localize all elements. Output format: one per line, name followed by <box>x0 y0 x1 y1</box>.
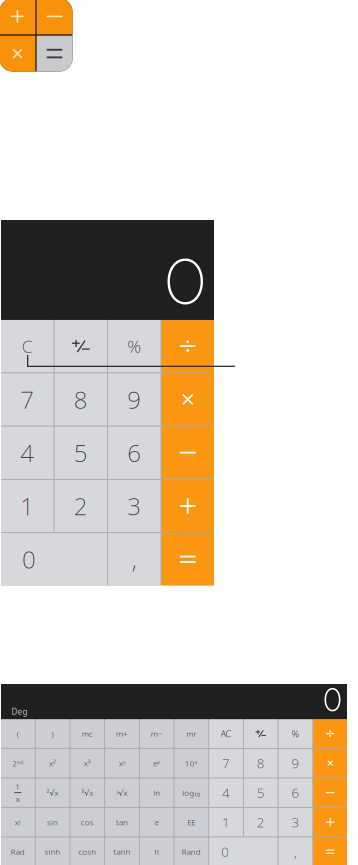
button[interactable]: Add <box>313 808 347 836</box>
staticText: ʸ√x <box>116 787 127 798</box>
staticText: 4 <box>20 437 34 469</box>
button[interactable]: 2 <box>54 480 107 532</box>
button[interactable]: AC <box>209 719 243 748</box>
button[interactable]: 1 <box>209 808 243 836</box>
staticText: ) <box>52 728 54 739</box>
staticText: 9 <box>291 754 299 772</box>
staticText: Deg <box>11 706 27 717</box>
button[interactable]: x! <box>1 808 35 836</box>
button[interactable]: Change sign <box>54 320 107 372</box>
staticText: x² <box>49 758 56 768</box>
button[interactable]: mc <box>70 719 104 748</box>
staticText: % <box>127 335 141 358</box>
button[interactable]: 5 <box>244 778 278 807</box>
button[interactable]: Multiply <box>313 749 347 777</box>
button[interactable]: Subtract <box>161 426 214 479</box>
button[interactable]: , <box>279 837 312 865</box>
staticText: ²√x <box>47 787 59 798</box>
button[interactable]: 10ˣ <box>174 749 208 777</box>
staticText: 3 <box>127 490 141 522</box>
button[interactable]: Rad <box>1 837 35 865</box>
staticText: mc <box>82 728 93 739</box>
button[interactable]: e <box>140 808 173 836</box>
button[interactable]: One over x <box>1 778 35 807</box>
button[interactable]: ) <box>36 719 69 748</box>
staticText: AC <box>221 727 232 740</box>
button[interactable]: Equals <box>313 837 347 865</box>
button[interactable]: tan <box>105 808 139 836</box>
button[interactable]: 9 <box>108 373 160 425</box>
staticText: m− <box>151 728 163 739</box>
button[interactable]: 4 <box>1 426 53 479</box>
button[interactable]: 4 <box>209 778 243 807</box>
button[interactable]: Change sign <box>244 719 278 748</box>
staticText: log₁₀ <box>182 787 200 798</box>
button[interactable]: Divide <box>313 719 347 748</box>
button[interactable]: % <box>279 719 312 748</box>
button[interactable]: π <box>140 837 173 865</box>
button[interactable]: 2ⁿᵈ <box>1 749 35 777</box>
button[interactable]: Calculator app icon <box>0 0 72 71</box>
staticText: ln <box>153 787 160 798</box>
button[interactable]: % <box>108 320 160 372</box>
button[interactable]: 0 <box>209 837 278 865</box>
button[interactable]: 1 <box>1 480 53 532</box>
button[interactable]: cosh <box>70 837 104 865</box>
staticText: 2 <box>74 490 88 522</box>
button[interactable]: cos <box>70 808 104 836</box>
button[interactable]: m− <box>140 719 173 748</box>
button[interactable]: tanh <box>105 837 139 865</box>
button[interactable]: Multiply <box>161 373 214 425</box>
staticText: 1 <box>222 813 230 831</box>
button[interactable]: ²√x <box>36 778 69 807</box>
staticText: x³ <box>84 758 91 768</box>
button[interactable]: 8 <box>54 373 107 425</box>
staticText: sin <box>47 817 58 827</box>
button[interactable]: 9 <box>279 749 312 777</box>
button[interactable]: 3 <box>279 808 312 836</box>
staticText: EE <box>187 817 195 827</box>
button[interactable]: ³√x <box>70 778 104 807</box>
button[interactable]: , <box>108 533 160 585</box>
staticText: 3 <box>291 813 299 831</box>
button[interactable]: Add <box>161 480 214 532</box>
button[interactable]: Equals <box>161 533 214 585</box>
staticText: 10ˣ <box>185 758 198 768</box>
button[interactable]: eˣ <box>140 749 173 777</box>
button[interactable]: m+ <box>105 719 139 748</box>
button[interactable]: sinh <box>36 837 69 865</box>
staticText: 0 <box>221 843 229 860</box>
button[interactable]: mr <box>174 719 208 748</box>
staticText: 5 <box>74 437 88 469</box>
button[interactable]: 0 <box>1 533 107 585</box>
button[interactable]: sin <box>36 808 69 836</box>
button[interactable]: 8 <box>244 749 278 777</box>
staticText: 2 <box>257 813 265 831</box>
staticText: sinh <box>45 846 61 857</box>
button[interactable]: xʸ <box>105 749 139 777</box>
button[interactable]: 7 <box>209 749 243 777</box>
button[interactable]: EE <box>174 808 208 836</box>
button[interactable]: Divide <box>161 320 214 372</box>
staticText: 2ⁿᵈ <box>12 758 23 768</box>
button[interactable]: 3 <box>108 480 160 532</box>
button[interactable]: ln <box>140 778 173 807</box>
button[interactable]: 5 <box>54 426 107 479</box>
staticText: cos <box>81 817 94 827</box>
button[interactable]: ʸ√x <box>105 778 139 807</box>
button[interactable]: C <box>1 320 53 372</box>
button[interactable]: x² <box>36 749 69 777</box>
button[interactable]: x³ <box>70 749 104 777</box>
staticText: xʸ <box>119 758 125 768</box>
button[interactable]: 6 <box>279 778 312 807</box>
button[interactable]: Rand <box>174 837 208 865</box>
button[interactable]: 2 <box>244 808 278 836</box>
staticText: % <box>291 727 299 740</box>
button[interactable]: ( <box>1 719 35 748</box>
staticText: 7 <box>20 383 34 415</box>
button[interactable]: log₁₀ <box>174 778 208 807</box>
button[interactable]: Subtract <box>313 778 347 807</box>
button[interactable]: 6 <box>108 426 160 479</box>
staticText: , <box>132 543 137 575</box>
button[interactable]: 7 <box>1 373 53 425</box>
